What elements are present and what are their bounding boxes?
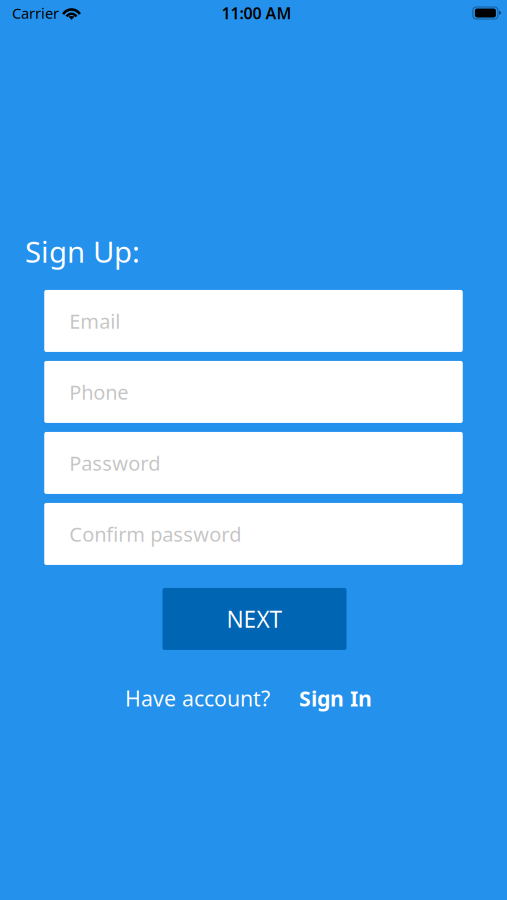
staticText: Sign In xyxy=(299,684,372,712)
staticText: Password xyxy=(69,450,160,476)
staticText: Have account? xyxy=(125,684,270,712)
button[interactable]: Phone xyxy=(44,361,463,423)
button[interactable]: NEXT xyxy=(162,588,346,650)
staticText: 11:00 AM xyxy=(221,2,291,24)
staticText: Confirm password xyxy=(69,521,241,547)
button[interactable]: Sign In xyxy=(299,684,372,712)
button[interactable]: Email xyxy=(44,290,463,352)
staticText: Sign Up: xyxy=(25,232,140,271)
staticText: Phone xyxy=(69,379,128,405)
staticText: Email xyxy=(69,308,120,334)
button[interactable]: Password xyxy=(44,432,463,494)
button[interactable]: Confirm password xyxy=(44,503,463,565)
staticText: Carrier xyxy=(12,3,59,23)
staticText: NEXT xyxy=(226,604,282,634)
